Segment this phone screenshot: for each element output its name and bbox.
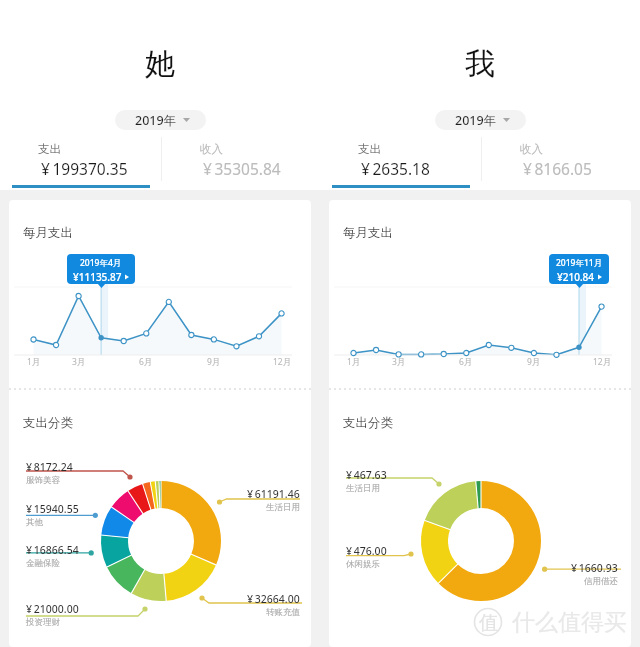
staticText: 6月	[459, 356, 473, 368]
button[interactable]: 2019年	[115, 110, 206, 130]
staticText: 支出	[358, 142, 381, 156]
staticText: 支出分类	[23, 415, 73, 431]
staticText: ¥ 21000.00	[26, 602, 79, 616]
staticText: 值	[479, 611, 498, 633]
staticText: ¥ 1660.93	[571, 561, 618, 575]
staticText: 2019年	[135, 112, 177, 129]
staticText: 支出分类	[343, 415, 393, 431]
staticText: 生活日用	[266, 502, 300, 513]
staticText: 其他	[26, 517, 43, 528]
button[interactable]: Monthly detail	[67, 254, 135, 284]
staticText: 12月	[273, 356, 292, 368]
staticText: ¥210.84	[557, 270, 595, 284]
staticText: 金融保险	[26, 558, 60, 569]
staticText: 3月	[392, 356, 406, 368]
staticText: ¥ 2635.18	[361, 158, 430, 179]
staticText: 投资理财	[26, 617, 60, 628]
staticText: ¥ 199370.35	[41, 158, 128, 179]
button[interactable]: 2019年	[435, 110, 526, 130]
staticText: 每月支出	[23, 225, 73, 241]
staticText: ¥ 467.63	[346, 468, 387, 482]
staticText: ¥ 35305.84	[203, 158, 281, 179]
staticText: 什么值得买	[512, 608, 627, 637]
staticText: 2019年4月	[80, 257, 122, 269]
staticText: ¥ 15940.55	[26, 502, 79, 516]
staticText: 3月	[72, 356, 86, 368]
staticText: 她	[145, 45, 175, 83]
staticText: 1月	[347, 356, 361, 368]
staticText: 9月	[207, 356, 221, 368]
staticText: ¥ 61191.46	[247, 487, 300, 501]
button[interactable]: Monthly detail	[549, 254, 609, 284]
staticText: ¥ 8172.24	[26, 460, 73, 474]
staticText: 1月	[27, 356, 41, 368]
staticText: 支出	[38, 142, 61, 156]
staticText: ¥ 476.00	[346, 544, 387, 558]
staticText: 转账充值	[266, 607, 300, 618]
staticText: 每月支出	[343, 225, 393, 241]
staticText: 2019年11月	[556, 257, 603, 269]
staticText: 我	[465, 45, 495, 83]
staticText: 2019年	[455, 112, 497, 129]
staticText: 9月	[527, 356, 541, 368]
staticText: ¥ 32664.00	[247, 592, 300, 606]
staticText: 休闲娱乐	[346, 559, 380, 570]
staticText: ¥ 16866.54	[26, 543, 79, 557]
staticText: 生活日用	[346, 483, 380, 494]
staticText: 服饰美容	[26, 475, 60, 486]
staticText: 信用借还	[584, 576, 618, 587]
staticText: 收入	[200, 142, 223, 156]
staticText: 6月	[139, 356, 153, 368]
staticText: 12月	[593, 356, 612, 368]
staticText: ¥11135.87	[73, 270, 122, 284]
staticText: ¥ 8166.05	[523, 158, 592, 179]
staticText: 收入	[520, 142, 543, 156]
